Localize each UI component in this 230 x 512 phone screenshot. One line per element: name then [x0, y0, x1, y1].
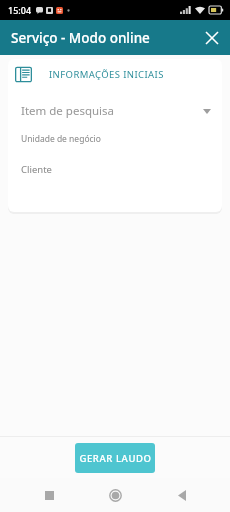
button[interactable]: Fechar	[198, 24, 226, 52]
staticText: Cliente	[21, 163, 52, 176]
button[interactable]: Recentes	[31, 478, 67, 512]
button[interactable]: GERAR LAUDO	[75, 443, 155, 473]
staticText: 15:04	[8, 4, 32, 16]
button[interactable]: Voltar	[164, 478, 200, 512]
staticText: Unidade de negócio	[21, 133, 101, 145]
staticText: INFORMAÇÕES INICIAIS	[49, 68, 164, 81]
staticText: Item de pesquisa	[21, 103, 114, 119]
staticText: Serviço - Modo online	[11, 29, 150, 47]
button[interactable]: Item de pesquisa	[15, 100, 215, 122]
staticText: GERAR LAUDO	[79, 452, 152, 465]
button[interactable]: Início	[97, 478, 133, 512]
